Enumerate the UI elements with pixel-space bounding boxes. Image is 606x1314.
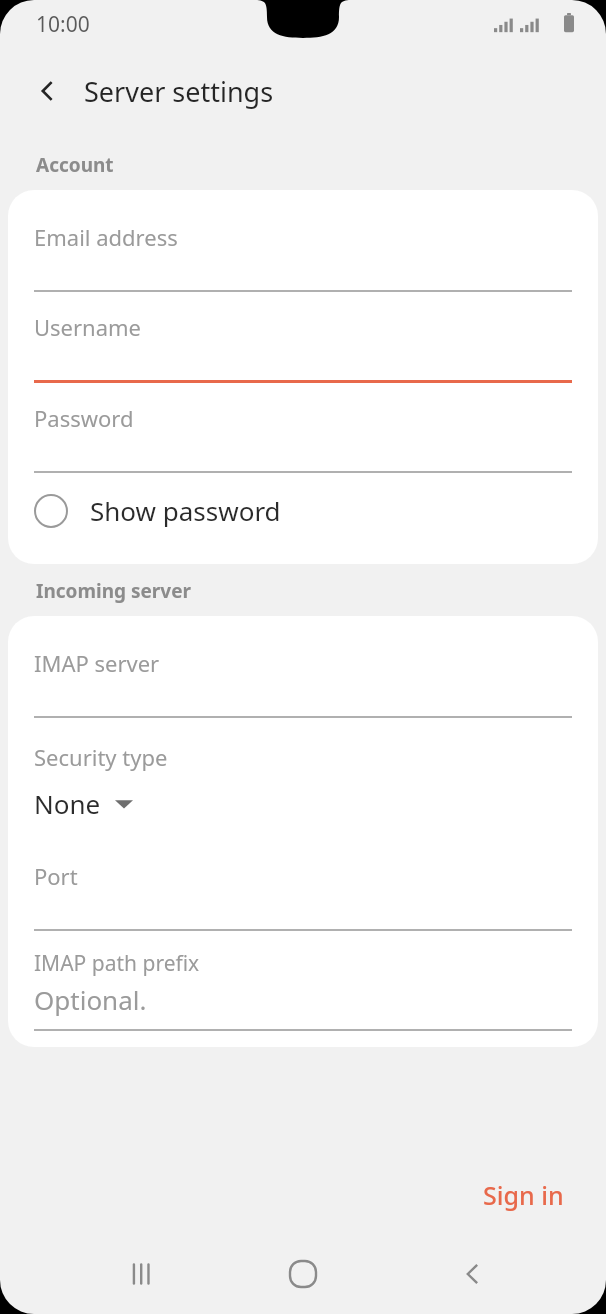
staticText: IMAP path prefix [34, 949, 200, 978]
staticText: Security type [34, 742, 168, 772]
staticText: Incoming server [36, 578, 191, 604]
button[interactable]: Sign in [471, 1170, 576, 1220]
button[interactable]: Username [8, 292, 598, 383]
staticText: Port [34, 861, 78, 891]
button[interactable]: Recent apps [108, 1242, 172, 1306]
button[interactable]: Security type [8, 718, 598, 841]
button[interactable]: Home [271, 1242, 335, 1306]
staticText: Server settings [84, 73, 274, 110]
staticText: Password [34, 403, 134, 433]
button[interactable]: Email address [8, 202, 598, 292]
button[interactable]: Show password [8, 473, 598, 548]
staticText: 10:00 [36, 10, 90, 39]
staticText: IMAP server [34, 648, 160, 678]
button[interactable]: IMAP path prefix [8, 931, 598, 1037]
staticText: Sign in [483, 1178, 564, 1212]
button[interactable]: IMAP server [8, 628, 598, 718]
staticText: Show password [90, 493, 281, 528]
button[interactable]: Port [8, 841, 598, 931]
staticText: Email address [34, 222, 178, 252]
button[interactable]: Back [441, 1242, 505, 1306]
button[interactable]: Password [8, 383, 598, 473]
staticText: Account [36, 152, 114, 178]
button[interactable]: Back [22, 65, 74, 117]
staticText: Optional. [34, 982, 147, 1017]
staticText: Username [34, 312, 142, 342]
staticText: None [34, 786, 101, 821]
